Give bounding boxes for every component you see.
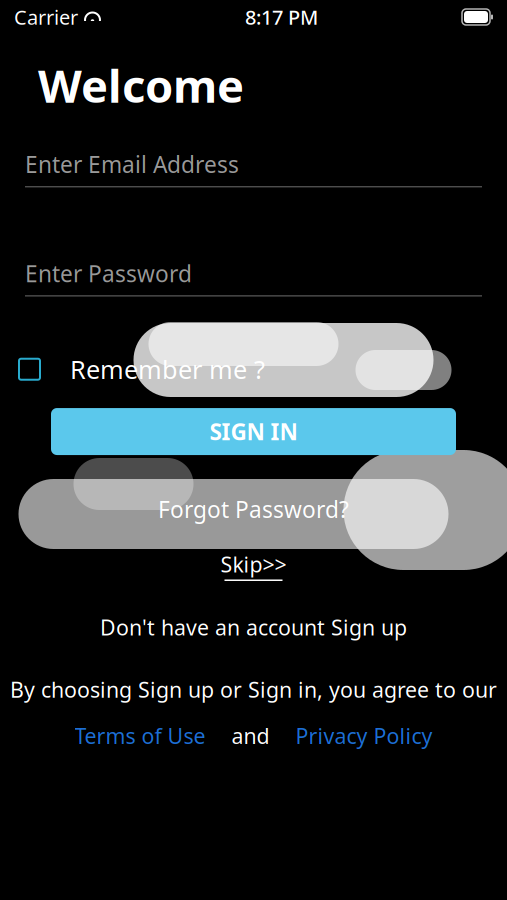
staticText: Privacy Policy [295,722,432,750]
button[interactable]: Don't have an account Sign up [0,613,507,641]
staticText: Forgot Password? [158,494,349,524]
staticText: Terms of Use [74,722,205,750]
staticText: Carrier [14,4,78,30]
staticText: SIGN IN [209,416,297,447]
staticText: Remember me ? [70,352,265,386]
button[interactable]: Remember me ? [0,352,507,386]
staticText: Don't have an account Sign up [100,613,407,641]
button[interactable]: Skip>> [0,550,507,581]
button[interactable]: Forgot Password? [0,494,507,524]
button[interactable]: SIGN IN [51,408,456,455]
staticText: Enter Email Address [25,149,239,179]
staticText: Skip>> [220,550,286,578]
staticText: 8:17 PM [245,4,318,30]
staticText: By choosing Sign up or Sign in, you agre… [10,675,497,704]
button[interactable]: Privacy Policy [295,722,432,750]
staticText: Enter Password [25,258,192,288]
staticText: Welcome [38,55,244,115]
staticText: and [231,722,269,750]
button[interactable]: Terms of Use [74,722,205,750]
